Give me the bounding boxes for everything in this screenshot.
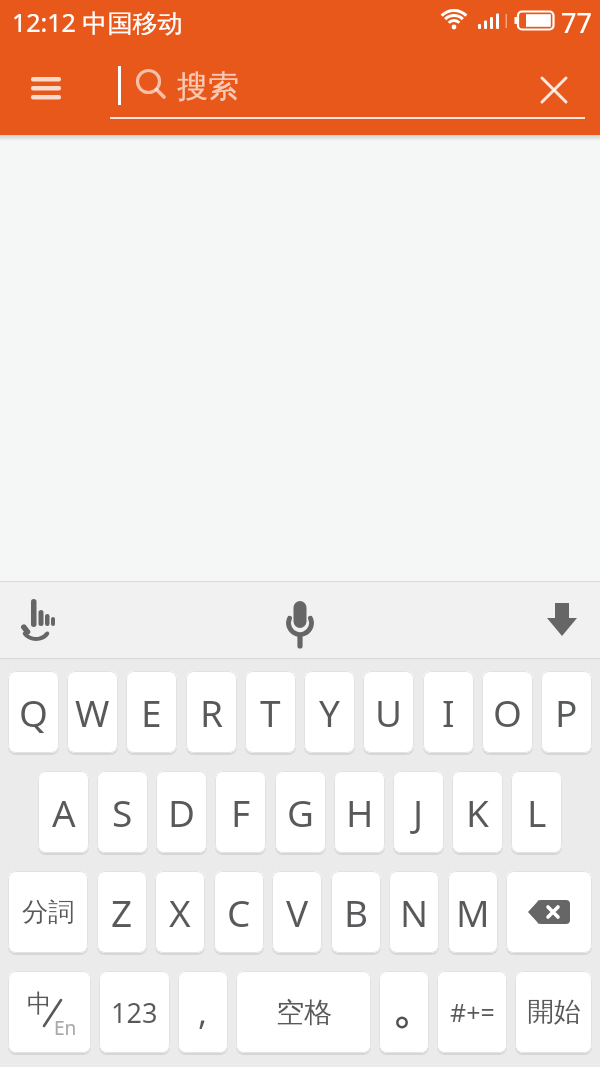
staticText: G [287,787,314,837]
staticText: Q [19,687,48,737]
button[interactable]: #+= [437,971,507,1053]
button[interactable]: J [393,771,444,853]
staticText: 開始 [527,995,581,1029]
button[interactable]: S [97,771,148,853]
button[interactable]: , [178,971,228,1053]
button[interactable]: N [389,871,439,953]
staticText: 中 [27,988,52,1019]
button[interactable] [16,60,76,120]
button[interactable]: 分詞 [8,871,88,953]
button[interactable]: K [452,771,503,853]
staticText: V [286,887,309,937]
staticText: W [75,687,110,737]
button[interactable]: D [156,771,207,853]
staticText: M [456,887,490,937]
button[interactable]: 123 [99,971,170,1053]
staticText: R [200,687,224,737]
staticText: S [112,787,133,837]
staticText: F [231,787,251,837]
staticText: K [466,787,489,837]
button[interactable]: C [214,871,264,953]
staticText: 分詞 [22,896,74,929]
button[interactable] [270,590,330,650]
button[interactable] [8,590,68,650]
staticText: En [54,1015,77,1041]
button[interactable]: 開始 [515,971,592,1053]
staticText: Y [319,687,340,737]
button[interactable]: L [511,771,562,853]
staticText: L [527,787,547,837]
staticText: 123 [111,994,158,1031]
button[interactable]: 中 [8,971,91,1053]
staticText: J [413,787,424,837]
staticText: E [141,687,162,737]
button[interactable]: 空格 [236,971,371,1053]
button[interactable]: Z [97,871,147,953]
staticText: 12:12 中国移动 [12,5,183,39]
button[interactable]: Q [8,671,59,753]
staticText: 77 [561,4,592,41]
button[interactable]: W [67,671,118,753]
button[interactable]: 搜索 [110,54,586,118]
button[interactable]: G [275,771,326,853]
button[interactable]: B [331,871,381,953]
button[interactable] [532,590,592,650]
staticText: 搜索 [177,67,239,106]
staticText: 空格 [276,995,332,1030]
button[interactable]: M [448,871,498,953]
staticText: C [227,887,251,937]
button[interactable]: V [272,871,322,953]
button[interactable]: P [541,671,592,753]
staticText: A [52,787,76,837]
staticText: , [198,989,208,1035]
button[interactable] [530,66,578,114]
button[interactable]: T [245,671,296,753]
button[interactable]: H [334,771,385,853]
button[interactable]: O [482,671,533,753]
staticText: I [442,687,455,737]
staticText: X [169,887,191,937]
button[interactable]: X [155,871,205,953]
staticText: D [168,787,196,837]
button[interactable]: I [423,671,474,753]
button[interactable]: U [363,671,414,753]
staticText: H [346,787,374,837]
button[interactable] [506,871,592,953]
staticText: T [260,687,281,737]
staticText: B [344,887,369,937]
button[interactable]: A [38,771,89,853]
staticText: Z [111,887,133,937]
staticText: P [555,687,578,737]
staticText: #+= [450,995,495,1029]
button[interactable]: E [126,671,177,753]
button[interactable] [379,971,429,1053]
staticText: O [493,687,522,737]
staticText: U [375,687,403,737]
staticText: N [400,887,429,937]
button[interactable]: R [186,671,237,753]
button[interactable]: F [215,771,266,853]
button[interactable]: Y [304,671,355,753]
